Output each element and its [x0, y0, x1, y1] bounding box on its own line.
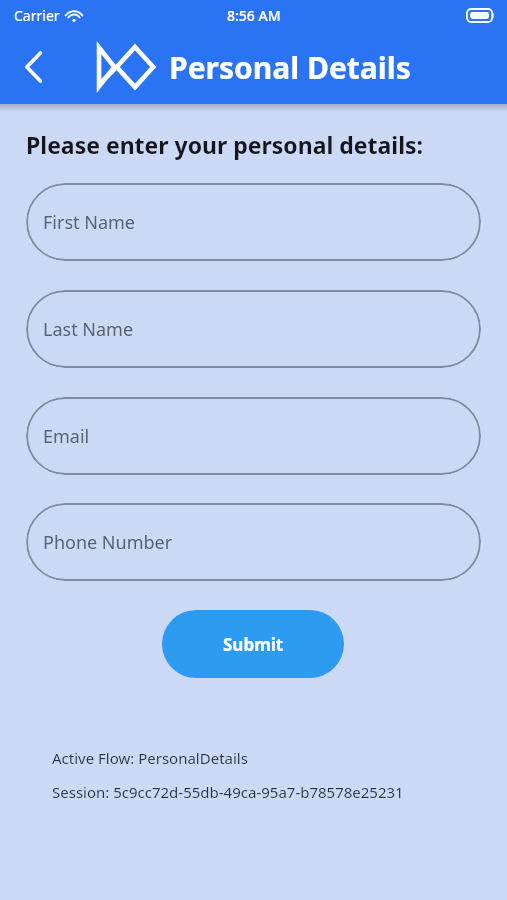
staticText: Please enter your personal details:	[26, 129, 424, 160]
button[interactable]: Email	[26, 397, 481, 475]
button[interactable]: Back	[8, 41, 60, 93]
staticText: Submit	[223, 633, 284, 656]
staticText: 8:56 AM	[227, 6, 281, 25]
staticText: Last Name	[43, 317, 134, 342]
button[interactable]: First Name	[26, 183, 481, 261]
button[interactable]: Phone Number	[26, 503, 481, 581]
staticText: Email	[43, 424, 90, 449]
staticText: Active Flow: PersonalDetails	[52, 748, 248, 768]
button[interactable]: Submit	[162, 610, 344, 678]
staticText: Personal Details	[169, 47, 411, 88]
staticText: Phone Number	[43, 530, 173, 555]
button[interactable]: Last Name	[26, 290, 481, 368]
staticText: Carrier	[14, 6, 60, 25]
staticText: Session: 5c9cc72d-55db-49ca-95a7-b78578e…	[52, 782, 404, 802]
staticText: First Name	[43, 210, 135, 235]
